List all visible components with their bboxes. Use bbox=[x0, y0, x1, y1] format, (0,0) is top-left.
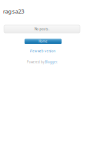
staticText: No posts. bbox=[34, 27, 49, 31]
staticText: Blogger bbox=[45, 60, 57, 64]
button[interactable]: Home bbox=[25, 39, 62, 44]
staticText: . bbox=[57, 60, 58, 64]
staticText: ragsa23 bbox=[3, 7, 24, 15]
button[interactable]: View web version bbox=[0, 48, 85, 54]
staticText: Home bbox=[39, 39, 48, 44]
button[interactable]: Blogger bbox=[45, 60, 57, 64]
staticText: View web version bbox=[29, 49, 55, 53]
staticText: Powered by bbox=[27, 60, 45, 64]
